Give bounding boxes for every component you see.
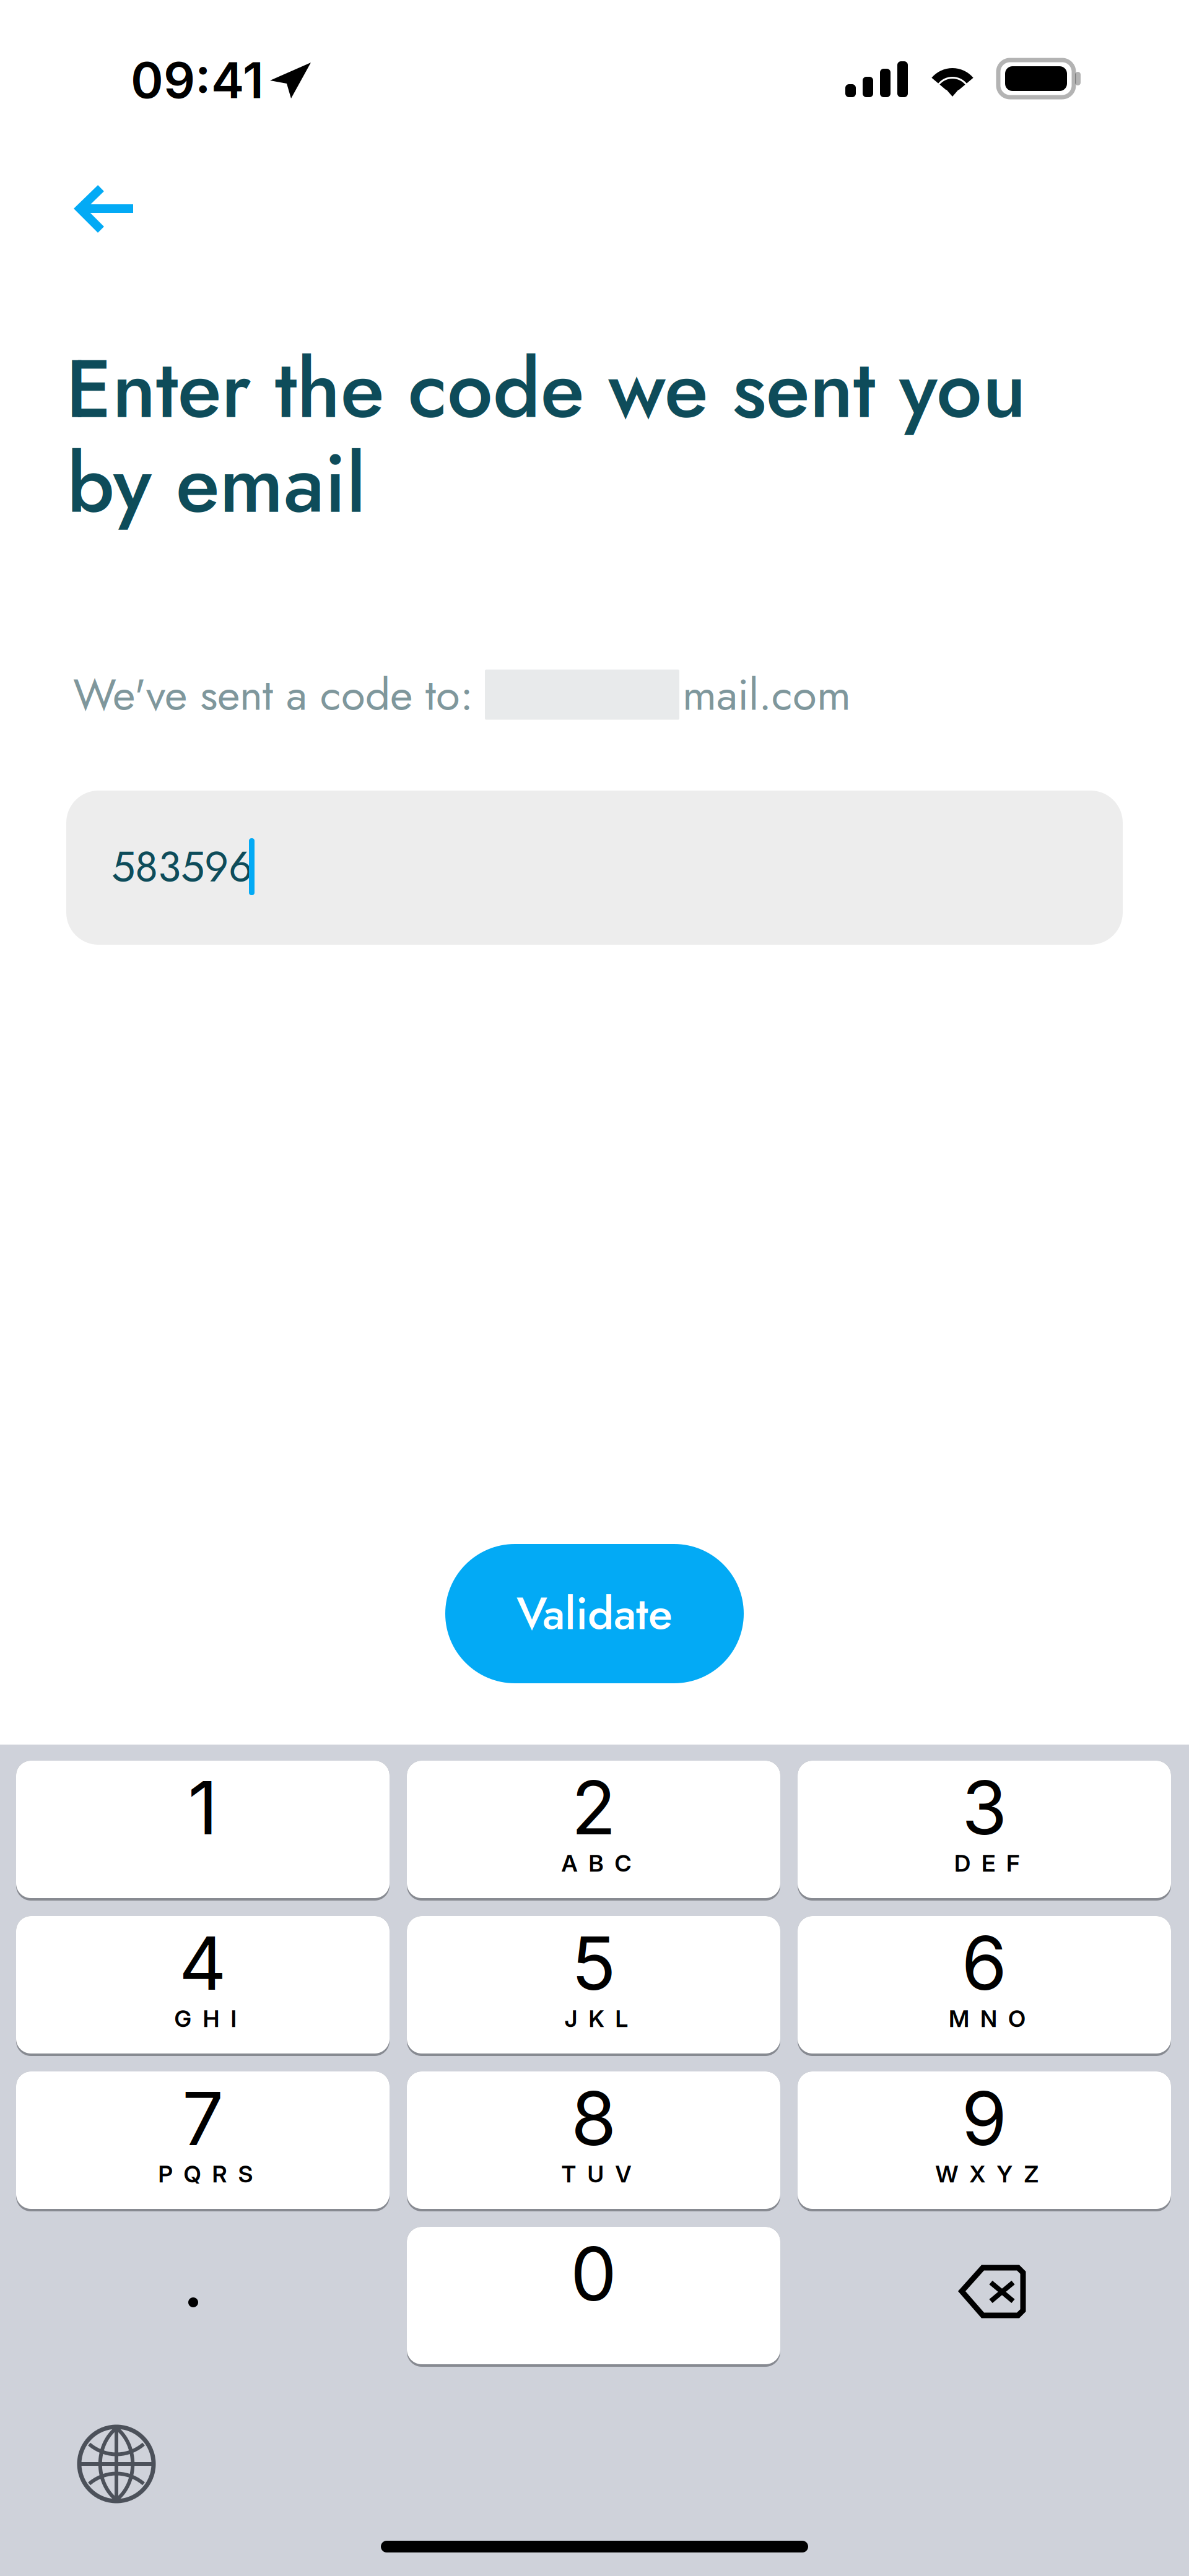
button[interactable]: Change keyboard language — [79, 2427, 156, 2504]
staticText: ABC — [561, 1849, 631, 1877]
button[interactable]: 0 — [407, 2227, 780, 2364]
staticText: TUV — [561, 2160, 631, 2188]
button[interactable]: 1 — [16, 1761, 390, 1898]
staticText: PQRS — [158, 2160, 253, 2188]
staticText: Enter the code we sent you — [66, 331, 1026, 447]
staticText: 5 — [571, 1919, 616, 2007]
staticText: by email — [67, 425, 366, 542]
staticText: 3 — [962, 1763, 1007, 1852]
staticText: 09:41 — [131, 50, 264, 110]
button[interactable]: 6 — [798, 1916, 1171, 2053]
staticText: 4 — [179, 1919, 227, 2007]
staticText: 0 — [570, 2229, 617, 2318]
button[interactable]: 4 — [16, 1916, 390, 2053]
button[interactable]: Period — [16, 2227, 390, 2364]
button[interactable]: Delete — [798, 2227, 1171, 2364]
button[interactable]: Back — [45, 163, 175, 256]
button[interactable]: 8 — [407, 2071, 780, 2209]
staticText: mail.com — [682, 663, 851, 726]
staticText: DEF — [954, 1849, 1020, 1877]
staticText: 583596 — [111, 836, 253, 897]
staticText: We've sent a code to: — [73, 663, 473, 726]
staticText: GHI — [174, 2005, 237, 2033]
staticText: 9 — [961, 2074, 1007, 2163]
staticText: 8 — [571, 2074, 616, 2163]
staticText: MNO — [949, 2005, 1026, 2033]
button[interactable]: 2 — [407, 1761, 780, 1898]
staticText: 6 — [961, 1919, 1007, 2007]
staticText: 7 — [182, 2074, 224, 2163]
staticText: Validate — [516, 1581, 673, 1646]
button[interactable]: 7 — [16, 2071, 390, 2209]
button[interactable]: 3 — [798, 1761, 1171, 1898]
button[interactable]: 9 — [798, 2071, 1171, 2209]
staticText: JKL — [564, 2005, 628, 2033]
staticText: 2 — [571, 1763, 616, 1852]
button[interactable]: Validate — [445, 1544, 744, 1683]
button[interactable]: 5 — [407, 1916, 780, 2053]
staticText: 1 — [188, 1763, 218, 1852]
staticText: WXYZ — [935, 2160, 1039, 2188]
